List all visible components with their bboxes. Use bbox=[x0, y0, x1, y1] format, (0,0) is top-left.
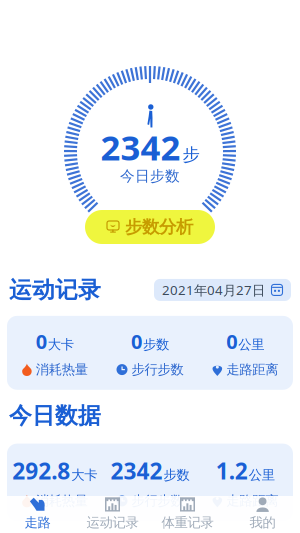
staticText: 0 bbox=[226, 328, 237, 354]
button[interactable]: 走路 bbox=[0, 494, 75, 533]
staticText: 运动记录 bbox=[86, 514, 138, 531]
staticText: 1.2 bbox=[216, 456, 248, 486]
staticText: 2021年04月27日 bbox=[162, 281, 265, 299]
staticText: 步数 bbox=[143, 336, 169, 353]
button[interactable]: 2021年04月27日 bbox=[154, 279, 291, 301]
staticText: 走路 bbox=[24, 514, 50, 531]
button[interactable]: 我的 bbox=[225, 494, 300, 533]
staticText: 292.8 bbox=[12, 456, 70, 486]
staticText: 今日数据 bbox=[9, 402, 101, 430]
staticText: 消耗热量 bbox=[36, 493, 88, 509]
staticText: 步数 bbox=[163, 467, 189, 483]
staticText: 0 bbox=[131, 328, 142, 354]
staticText: 运动记录 bbox=[9, 276, 101, 304]
staticText: 0 bbox=[36, 328, 47, 354]
staticText: 2342 bbox=[100, 124, 180, 170]
button[interactable]: 运动记录 bbox=[75, 494, 150, 533]
staticText: 今日步数 bbox=[120, 167, 180, 185]
staticText: 步行步数 bbox=[131, 493, 183, 509]
staticText: 消耗热量 bbox=[36, 361, 88, 378]
button[interactable]: 体重记录 bbox=[150, 494, 225, 533]
staticText: 我的 bbox=[249, 514, 275, 531]
staticText: 走路距离 bbox=[226, 361, 278, 378]
staticText: 公里 bbox=[238, 336, 264, 353]
staticText: 体重记录 bbox=[161, 514, 213, 531]
staticText: 公里 bbox=[249, 467, 275, 483]
button[interactable]: 步数分析 bbox=[85, 210, 215, 244]
staticText: 大卡 bbox=[48, 336, 74, 353]
staticText: 步行步数 bbox=[131, 361, 183, 378]
staticText: 走路距离 bbox=[226, 493, 278, 509]
staticText: 步数分析 bbox=[125, 216, 193, 238]
staticText: 步 bbox=[182, 144, 199, 165]
staticText: 2342 bbox=[110, 456, 162, 486]
staticText: 大卡 bbox=[71, 467, 97, 483]
